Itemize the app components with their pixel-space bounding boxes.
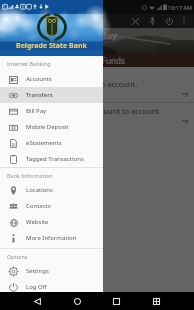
staticText: 10:17 AM <box>168 4 192 11</box>
staticText: Accounts <box>26 75 52 83</box>
button[interactable]: Log off <box>161 14 178 28</box>
button[interactable]: Settings <box>0 263 103 279</box>
staticText: Belgrade State Bank <box>16 41 87 51</box>
button[interactable]: Log Off <box>0 279 103 295</box>
staticText: Options <box>7 253 28 260</box>
button[interactable]: Voice search <box>144 14 161 28</box>
button[interactable]: Website <box>0 214 103 230</box>
staticText: Bank Information <box>7 172 53 179</box>
staticText: Transfer Funds <box>68 55 125 66</box>
button[interactable]: Recents <box>103 292 129 310</box>
button[interactable]: Split screen <box>143 292 169 310</box>
button[interactable]: Close <box>127 14 144 28</box>
button[interactable]: eStatements <box>0 135 103 151</box>
staticText: Log Off <box>26 283 47 291</box>
staticText: Pay a bill today <box>49 29 118 41</box>
staticText: Tagged Transactions <box>26 155 84 163</box>
staticText: eStatements <box>26 139 62 147</box>
button[interactable]: Contacts <box>0 198 103 214</box>
button[interactable]: Transfers <box>0 87 103 103</box>
button[interactable]: Home <box>64 292 90 310</box>
staticText: Settings <box>26 267 49 275</box>
button[interactable]: Accounts <box>0 71 103 87</box>
staticText: Transfer from account to account. <box>42 106 162 116</box>
staticText: Transfers <box>26 91 53 99</box>
button[interactable]: Mobile Deposit <box>0 119 103 135</box>
button[interactable]: More options <box>178 14 189 28</box>
staticText: Contacts <box>26 202 51 210</box>
button[interactable]: Locations <box>0 182 103 198</box>
staticText: Bill Pay <box>26 107 47 115</box>
staticText: Transfer money to account. <box>41 79 138 89</box>
button[interactable]: Tagged Transactions <box>0 151 103 167</box>
staticText: Quick and functional, no worries! <box>43 38 118 44</box>
staticText: Locations <box>26 186 53 194</box>
staticText: Mobile Deposit <box>26 123 69 131</box>
button[interactable]: Transfer from account to account. <box>0 103 194 129</box>
button[interactable]: Bill Pay <box>0 103 103 119</box>
button[interactable]: More Information <box>0 230 103 246</box>
button[interactable]: Transfer money to account. <box>0 76 194 102</box>
staticText: Website <box>26 218 49 226</box>
staticText: More Information <box>26 234 77 242</box>
staticText: Internet Banking <box>7 60 51 67</box>
button[interactable]: Back <box>24 292 50 310</box>
